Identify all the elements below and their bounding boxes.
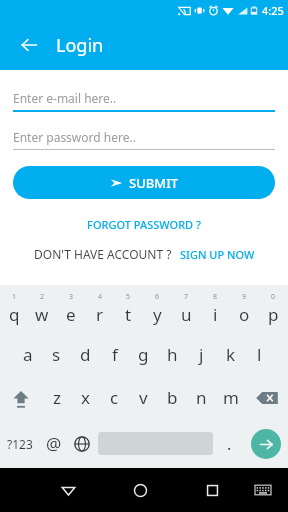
staticText: 0: [271, 292, 276, 302]
staticText: ?123: [7, 436, 33, 452]
button[interactable]: .: [215, 419, 243, 468]
button[interactable]: 7: [172, 285, 201, 333]
button[interactable]: 3: [56, 285, 85, 333]
staticText: 1: [12, 292, 17, 302]
button[interactable]: x: [71, 376, 100, 419]
staticText: SIGN UP NOW: [180, 247, 255, 262]
button[interactable]: 1: [0, 285, 28, 333]
staticText: FORGOT PASSWORD ?: [87, 217, 201, 232]
staticText: b: [167, 386, 178, 409]
button[interactable]: ?123: [0, 419, 40, 468]
button[interactable]: k: [216, 333, 245, 376]
button[interactable]: Back: [12, 28, 46, 62]
button[interactable]: s: [42, 333, 71, 376]
button[interactable]: j: [187, 333, 216, 376]
staticText: t: [125, 303, 132, 326]
staticText: a: [23, 343, 33, 366]
staticText: v: [139, 386, 148, 409]
staticText: .: [227, 433, 232, 455]
staticText: DON'T HAVE ACCOUNT ?: [34, 246, 172, 262]
staticText: j: [199, 343, 204, 366]
staticText: d: [80, 343, 91, 366]
button[interactable]: l: [245, 333, 274, 376]
button[interactable]: 6: [143, 285, 172, 333]
staticText: 2: [40, 292, 45, 302]
staticText: l: [257, 343, 262, 366]
button[interactable]: a: [13, 333, 42, 376]
button[interactable]: Change language: [68, 419, 96, 468]
staticText: w: [35, 303, 49, 326]
button[interactable]: Recent apps: [193, 468, 231, 512]
staticText: 3: [69, 292, 74, 302]
button[interactable]: n: [187, 376, 216, 419]
staticText: Enter e-mail here..: [13, 90, 117, 106]
button[interactable]: Back: [49, 468, 87, 512]
button[interactable]: Enter e-mail here..: [13, 86, 275, 110]
staticText: k: [226, 343, 236, 366]
button[interactable]: 5: [114, 285, 143, 333]
button[interactable]: f: [100, 333, 129, 376]
button[interactable]: c: [100, 376, 129, 419]
button[interactable]: Shift: [0, 376, 42, 419]
staticText: i: [213, 303, 218, 326]
staticText: f: [112, 343, 118, 366]
button[interactable]: 0: [259, 285, 288, 333]
button[interactable]: Enter: [243, 419, 288, 468]
staticText: 4:25: [262, 3, 284, 18]
staticText: p: [268, 303, 279, 326]
button[interactable]: 9: [230, 285, 259, 333]
staticText: m: [223, 386, 239, 409]
button[interactable]: SIGN UP NOW: [180, 247, 255, 262]
staticText: 6: [155, 292, 160, 302]
staticText: 7: [184, 292, 189, 302]
button[interactable]: 8: [201, 285, 230, 333]
staticText: @: [46, 432, 62, 455]
staticText: r: [96, 303, 104, 326]
button[interactable]: Backspace: [245, 376, 288, 419]
staticText: g: [138, 343, 149, 366]
button[interactable]: Enter password here..: [13, 125, 275, 149]
button[interactable]: 2: [28, 285, 56, 333]
button[interactable]: z: [42, 376, 71, 419]
button[interactable]: 4: [85, 285, 114, 333]
button[interactable]: @: [40, 419, 68, 468]
staticText: Enter password here..: [13, 129, 136, 145]
staticText: SUBMIT: [129, 174, 179, 192]
button[interactable]: m: [216, 376, 245, 419]
button[interactable]: SUBMIT: [13, 166, 275, 199]
staticText: y: [153, 303, 162, 326]
staticText: 5: [126, 292, 131, 302]
staticText: u: [181, 303, 192, 326]
button[interactable]: g: [129, 333, 158, 376]
staticText: o: [239, 303, 250, 326]
staticText: s: [52, 343, 61, 366]
button[interactable]: FORGOT PASSWORD ?: [13, 217, 275, 232]
button[interactable]: d: [71, 333, 100, 376]
staticText: Login: [56, 33, 104, 58]
button[interactable]: h: [158, 333, 187, 376]
staticText: q: [9, 303, 20, 326]
staticText: 4: [98, 292, 103, 302]
staticText: e: [66, 303, 76, 326]
button[interactable]: v: [129, 376, 158, 419]
staticText: x: [81, 386, 90, 409]
staticText: 8: [213, 292, 218, 302]
staticText: 9: [242, 292, 247, 302]
button[interactable]: b: [158, 376, 187, 419]
button[interactable]: Switch keyboard: [244, 468, 282, 512]
staticText: h: [167, 343, 178, 366]
staticText: c: [110, 386, 119, 409]
staticText: n: [196, 386, 207, 409]
staticText: z: [53, 386, 61, 409]
button[interactable]: Home: [121, 468, 159, 512]
